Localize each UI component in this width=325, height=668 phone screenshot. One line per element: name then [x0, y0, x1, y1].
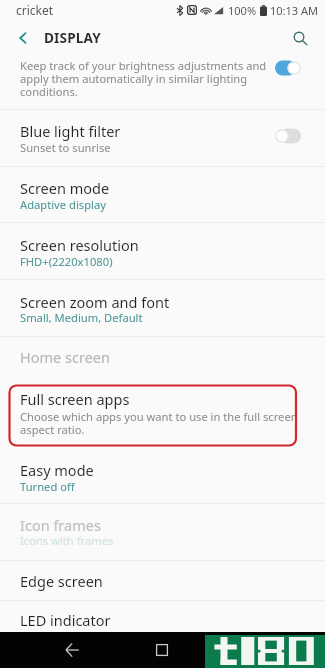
- staticText: LED indicator: [20, 610, 111, 630]
- button[interactable]: [0, 380, 325, 442]
- button[interactable]: [0, 280, 325, 336]
- staticText: aspect ratio.: [20, 422, 85, 437]
- staticText: FHD+(2220x1080): [20, 254, 113, 269]
- button[interactable]: [0, 561, 325, 600]
- staticText: 10:13 AM: [270, 3, 318, 18]
- button[interactable]: Back: [57, 635, 86, 664]
- staticText: Full screen apps: [20, 389, 130, 409]
- staticText: Small, Medium, Default: [20, 310, 143, 325]
- staticText: apply them automatically in similar ligh…: [20, 71, 248, 86]
- staticText: cricket: [16, 2, 54, 18]
- button[interactable]: Search: [285, 23, 315, 53]
- staticText: Screen resolution: [20, 235, 139, 255]
- staticText: Edge screen: [20, 571, 103, 591]
- staticText: Turned off: [20, 479, 75, 494]
- button[interactable]: [0, 167, 325, 222]
- staticText: Icon frames: [20, 515, 101, 535]
- staticText: 100%: [228, 3, 257, 18]
- staticText: Adaptive display: [20, 197, 106, 212]
- staticText: Keep track of your brightness adjustment…: [20, 58, 267, 73]
- button[interactable]: Recents: [147, 635, 176, 664]
- button[interactable]: [0, 504, 325, 560]
- button[interactable]: [0, 223, 325, 279]
- staticText: DISPLAY: [44, 28, 101, 47]
- staticText: Blue light filter: [20, 121, 121, 141]
- staticText: Sunset to sunrise: [20, 140, 111, 155]
- button[interactable]: Back: [8, 23, 38, 53]
- staticText: Easy mode: [20, 460, 94, 480]
- staticText: Screen mode: [20, 178, 110, 198]
- staticText: Screen zoom and font: [20, 292, 170, 312]
- button[interactable]: [0, 50, 325, 109]
- button[interactable]: [0, 110, 325, 166]
- staticText: Icons with frames: [20, 533, 114, 548]
- button[interactable]: [0, 601, 325, 632]
- staticText: Choose which apps you want to use in the…: [20, 409, 298, 424]
- button[interactable]: [0, 447, 325, 503]
- staticText: Home screen: [20, 347, 110, 367]
- staticText: conditions.: [20, 84, 78, 99]
